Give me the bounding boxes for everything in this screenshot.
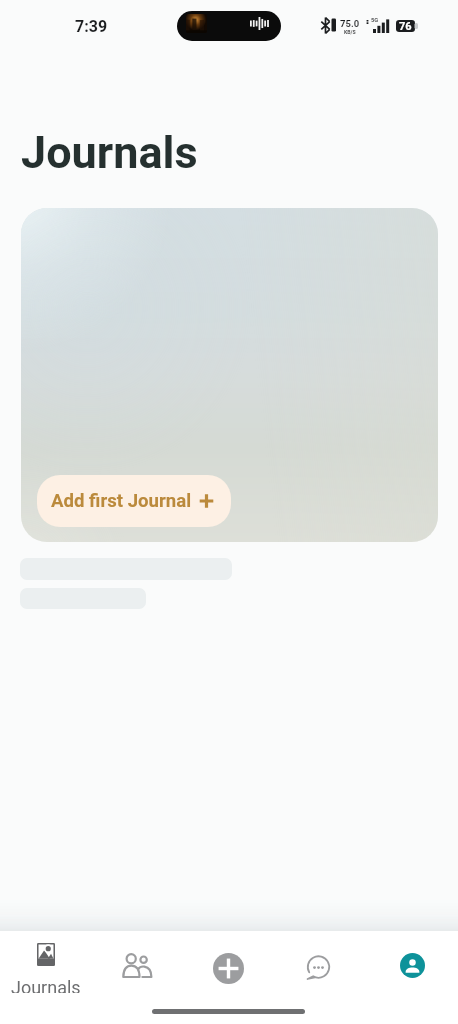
staticText: 76	[399, 20, 412, 33]
button[interactable]: Create	[182, 931, 274, 993]
button[interactable]: Friends	[91, 931, 182, 993]
button[interactable]: Add first Journal	[21, 208, 438, 542]
staticText: Journals	[21, 126, 198, 179]
button[interactable]: Messages	[274, 931, 366, 993]
button[interactable]: Profile	[366, 931, 458, 993]
staticText: 5G	[371, 17, 379, 24]
staticText: 75.0	[340, 18, 360, 29]
staticText: 7:39	[75, 17, 108, 36]
button[interactable]: Add first Journal	[37, 475, 231, 527]
staticText: KB/S	[344, 29, 356, 35]
staticText: Journals	[11, 977, 81, 993]
button[interactable]: Journals	[0, 931, 91, 993]
staticText: Add first Journal	[51, 490, 192, 512]
